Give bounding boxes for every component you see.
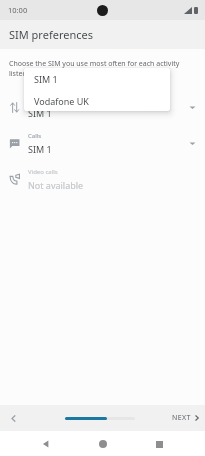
- staticText: Vodafone UK: [34, 95, 89, 107]
- staticText: SIM 1: [34, 73, 58, 85]
- staticText: Calls: [28, 132, 42, 140]
- button[interactable]: NEXT: [172, 413, 200, 423]
- button[interactable]: Recent apps: [148, 433, 170, 455]
- staticText: SIM 1: [28, 107, 52, 119]
- staticText: SIM 1: [28, 143, 52, 155]
- staticText: NEXT: [172, 413, 191, 423]
- button[interactable]: Previous: [3, 408, 23, 428]
- staticText: Video calls: [28, 168, 58, 176]
- button[interactable]: Back: [35, 433, 57, 455]
- button[interactable]: Video calls: [0, 164, 205, 194]
- button[interactable]: SIM 1: [24, 68, 170, 90]
- button[interactable]: Home: [92, 433, 114, 455]
- staticText: 10:00: [8, 5, 28, 15]
- staticText: Choose the SIM you use most often for ea…: [9, 59, 196, 79]
- button[interactable]: Vodafone UK: [24, 90, 170, 111]
- button[interactable]: Data: [0, 92, 205, 122]
- button[interactable]: Calls: [0, 128, 205, 158]
- staticText: SIM preferences: [9, 27, 93, 42]
- staticText: Data: [28, 96, 42, 104]
- staticText: Not available: [28, 179, 84, 191]
